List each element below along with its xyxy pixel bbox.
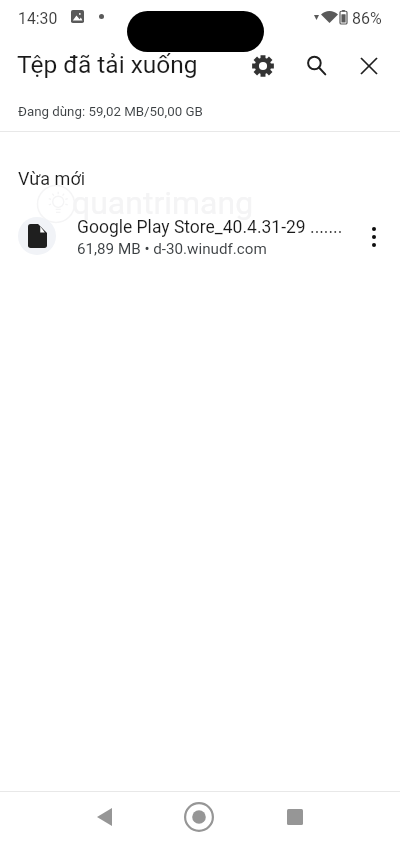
staticText: 14:30	[18, 9, 58, 28]
button[interactable]: Settings	[242, 45, 283, 86]
staticText: Google Play Store_40.4.31-29 .......	[77, 217, 343, 238]
button[interactable]: Recents	[271, 793, 319, 841]
button[interactable]: Google Play Store_40.4.31-29 .......	[0, 206, 400, 268]
staticText: Đang dùng: 59,02 MB/50,00 GB	[18, 104, 203, 120]
button[interactable]: Back	[80, 793, 128, 841]
button[interactable]: More options	[352, 215, 396, 259]
button[interactable]: Search	[296, 45, 337, 86]
staticText: Tệp đã tải xuống	[17, 50, 198, 79]
staticText: 61,89 MB • d-30.winudf.com	[77, 240, 267, 258]
button[interactable]: Home	[175, 793, 223, 841]
button[interactable]: Close	[348, 45, 389, 86]
staticText: 86%	[352, 9, 382, 28]
staticText: Vừa mới	[18, 168, 86, 189]
staticText: quantrimang	[72, 184, 254, 222]
